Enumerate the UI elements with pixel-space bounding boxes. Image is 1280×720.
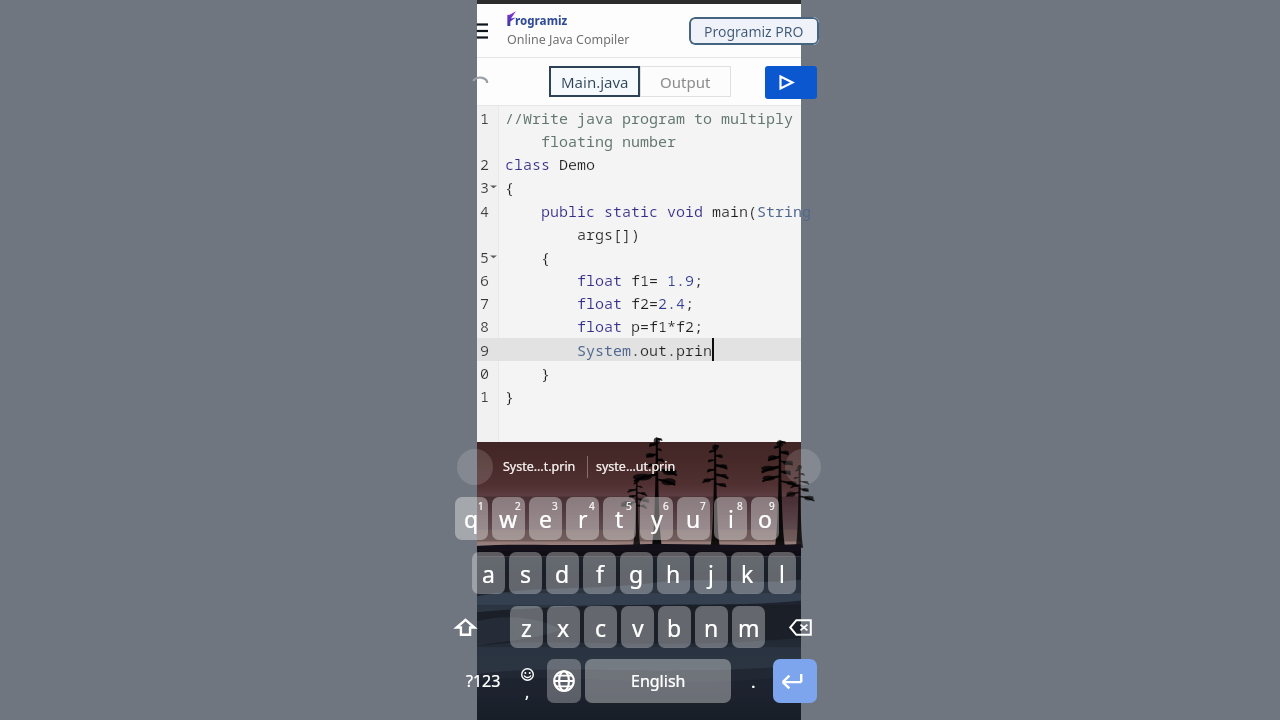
staticText: c [595,612,607,643]
button[interactable]: k [731,552,764,594]
button[interactable]: z [510,606,543,648]
staticText: n [704,612,719,643]
staticText: } [505,386,515,406]
button[interactable]: q [455,497,488,540]
staticText: System.out.prin [505,340,713,360]
button[interactable]: l [768,552,796,594]
button[interactable]: Menu [476,16,500,46]
button[interactable]: a [472,552,505,594]
staticText: float f2=2.4; [505,293,695,313]
staticText: 5 [626,499,632,513]
staticText: float f1= 1.9; [505,270,704,290]
button[interactable]: Programiz PRO [689,17,819,45]
button[interactable]: y [640,497,673,540]
staticText: f [596,558,604,589]
staticText: 2 [480,154,490,174]
staticText: y [651,503,663,534]
staticText: m [738,612,760,643]
staticText: Online Java Compiler [507,31,630,48]
button[interactable]: r [566,497,599,540]
staticText: public static void main(String [505,201,812,221]
staticText: k [741,558,754,589]
button[interactable]: Shift [445,606,485,648]
button[interactable]: g [620,552,653,594]
staticText: 8 [737,499,743,513]
button[interactable]: w [492,497,525,540]
staticText: t [615,503,624,534]
staticText: Output [660,72,711,92]
staticText: { [505,177,515,197]
button[interactable]: Syste…t.prin [503,458,576,475]
button[interactable]: Enter [773,659,817,703]
button[interactable]: b [658,606,691,648]
staticText: English [631,670,686,692]
staticText: x [557,612,570,643]
staticText: w [499,503,518,534]
staticText: v [632,612,644,643]
button[interactable]: v [621,606,654,648]
staticText: s [520,558,532,589]
button[interactable]: x [547,606,580,648]
staticText: a [482,558,495,589]
staticText: 4 [480,201,490,221]
button[interactable]: i [714,497,747,540]
staticText: , [525,681,530,703]
button[interactable]: e [529,497,562,540]
staticText: 1 [480,386,490,406]
button[interactable]: Run [765,66,817,99]
staticText: 3 [480,177,490,197]
staticText: r [578,503,588,534]
button[interactable]: More suggestions [785,449,821,485]
button[interactable]: Backspace [780,606,820,648]
button[interactable]: d [546,552,579,594]
staticText: q [464,503,479,534]
staticText: ?123 [466,670,501,692]
button[interactable]: s [509,552,542,594]
staticText: 7 [480,293,490,313]
staticText: 0 [480,363,490,383]
button[interactable]: n [695,606,728,648]
staticText: 8 [480,316,490,336]
staticText: 7 [700,499,706,513]
staticText: 9 [480,340,490,360]
staticText: 9 [769,499,775,513]
staticText: { [505,247,551,267]
button[interactable]: h [657,552,690,594]
button[interactable]: syste…ut.prin [596,458,676,475]
staticText: o [758,503,772,534]
button[interactable]: Main.java [549,66,640,97]
staticText: e [539,503,552,534]
staticText: } [505,363,551,383]
staticText: Main.java [561,72,629,92]
staticText: u [686,503,701,534]
button[interactable]: Clipboard [457,449,493,485]
staticText: j [708,558,714,589]
staticText: l [779,558,785,589]
button[interactable]: ?123 [461,659,505,703]
staticText: . [751,670,756,693]
staticText: rogramiz [515,13,568,29]
button[interactable]: Switch language [547,659,581,703]
button[interactable]: t [603,497,636,540]
button[interactable]: f [583,552,616,594]
button[interactable]: English [585,659,731,703]
button[interactable]: Output [640,66,731,97]
button[interactable]: m [732,606,765,648]
staticText: Programiz PRO [704,22,804,41]
staticText: 4 [589,499,595,513]
staticText: i [728,503,734,534]
button[interactable]: c [584,606,617,648]
staticText: float p=f1*f2; [505,316,704,336]
staticText: d [555,558,570,589]
staticText: h [666,558,681,589]
button[interactable]: Emoji and comma [514,659,540,703]
button[interactable]: o [751,497,779,540]
staticText: //Write java program to multiply [505,108,794,128]
staticText: 6 [480,270,490,290]
button[interactable]: u [677,497,710,540]
button[interactable]: . [739,659,767,703]
staticText: g [629,558,644,589]
staticText: 5 [480,247,490,267]
button[interactable]: j [694,552,727,594]
staticText: 6 [663,499,669,513]
